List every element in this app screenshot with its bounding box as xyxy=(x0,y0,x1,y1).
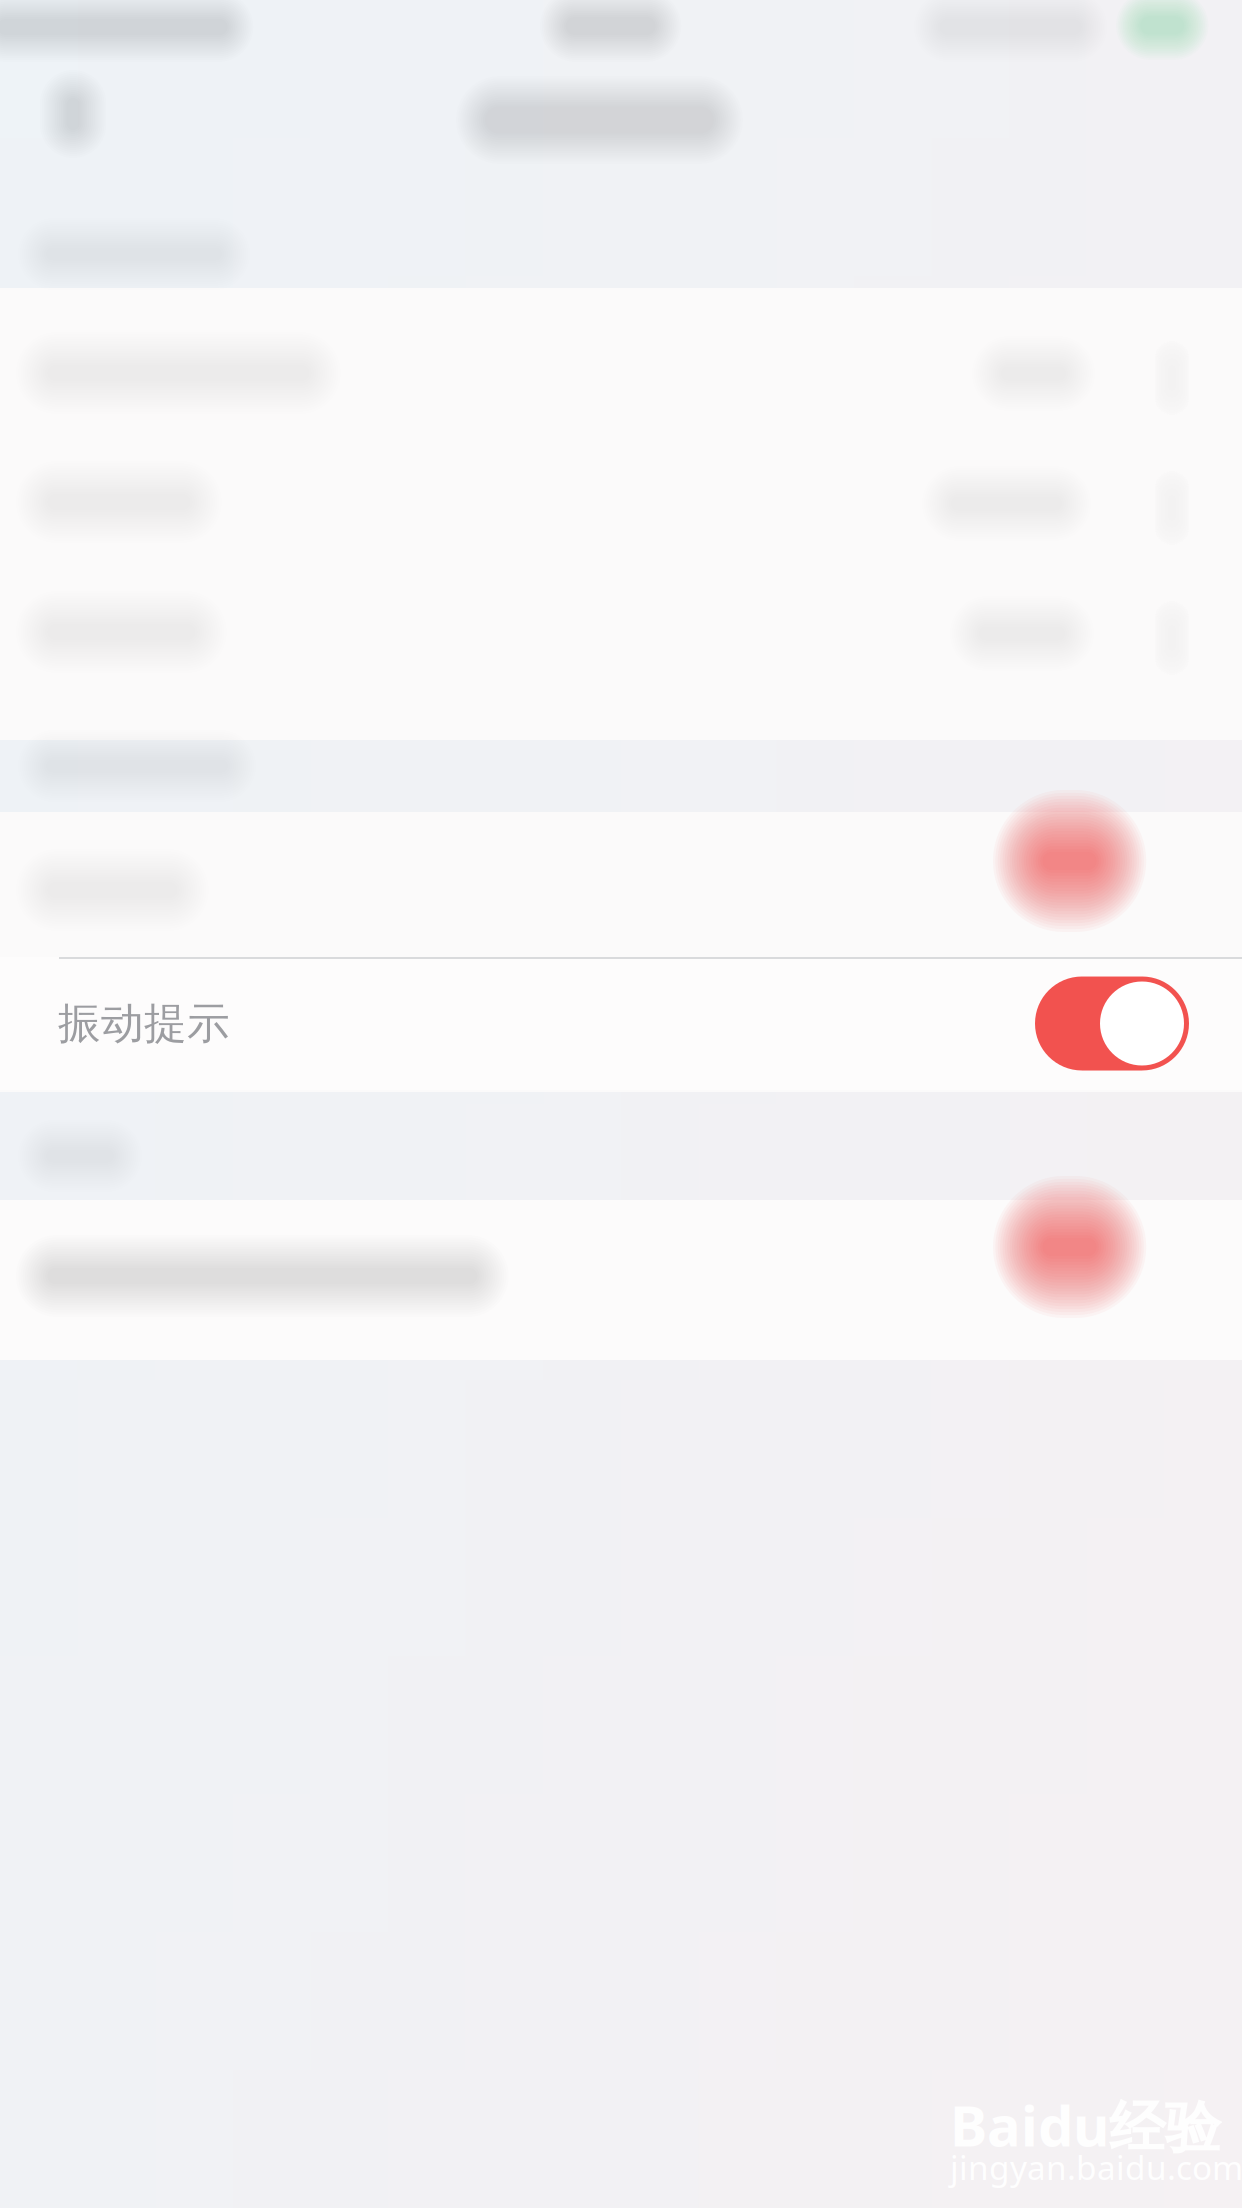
staticText: Baidu经验 xyxy=(950,2088,1221,2162)
staticText: 振动提示 xyxy=(58,997,230,1050)
staticText: jingyan.baidu.com xyxy=(950,2145,1242,2189)
button[interactable]: 振动提示 xyxy=(0,957,1242,1090)
